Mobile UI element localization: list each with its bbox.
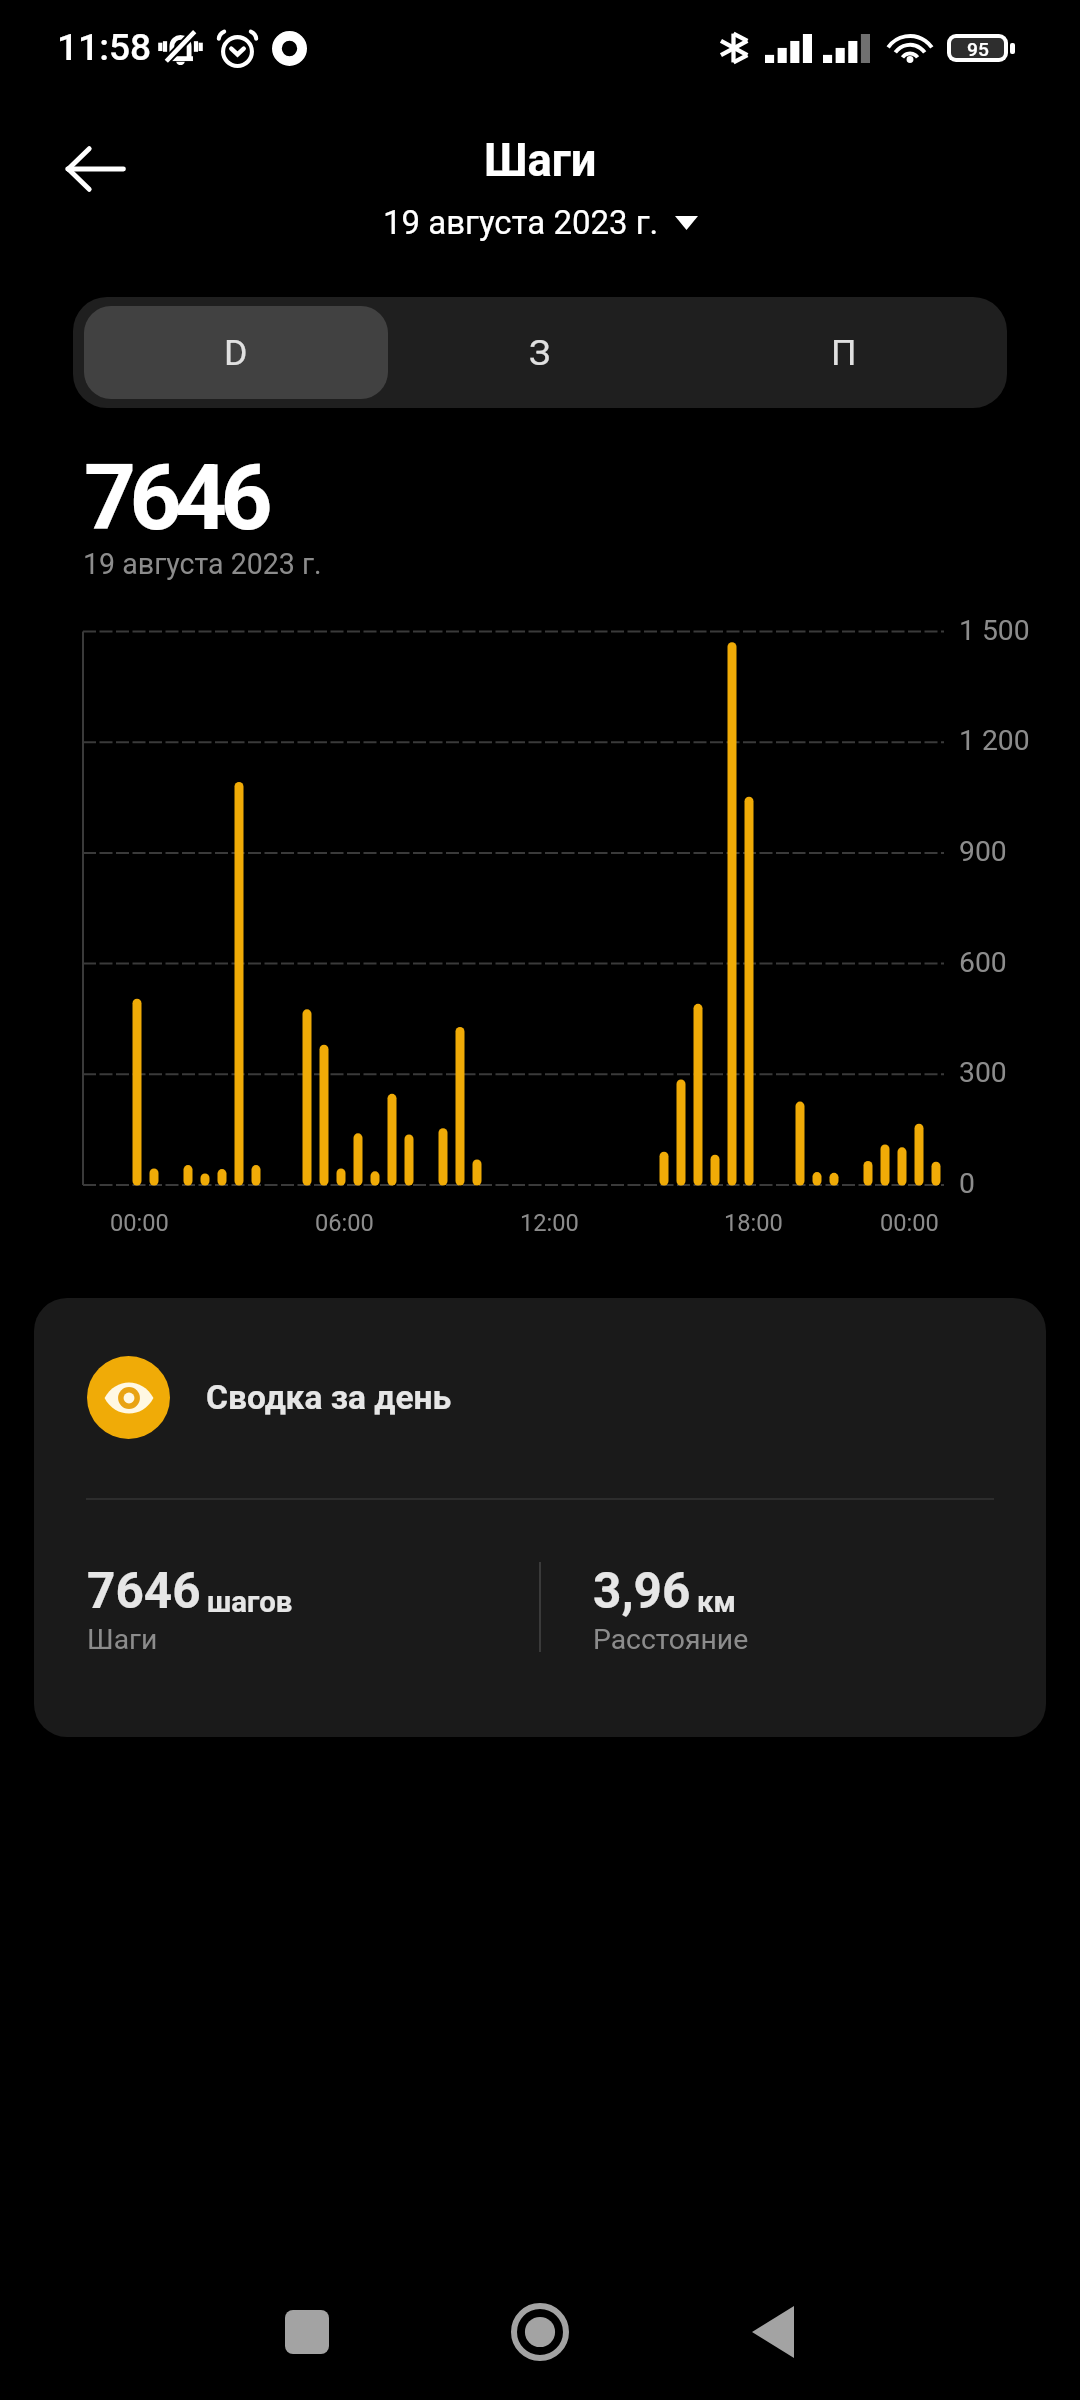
staticText: 7646 xyxy=(87,1562,201,1620)
button[interactable]: Recent apps xyxy=(263,2288,351,2376)
button[interactable]: Home xyxy=(496,2288,584,2376)
staticText: 900 xyxy=(959,835,1007,868)
staticText: 300 xyxy=(959,1056,1007,1089)
staticText: 19 августа 2023 г. xyxy=(383,203,659,242)
button[interactable]: П xyxy=(692,306,996,399)
staticText: км xyxy=(697,1585,736,1619)
staticText: 12:00 xyxy=(520,1209,579,1237)
staticText: 95 xyxy=(967,38,989,58)
staticText: 1 200 xyxy=(959,724,1030,757)
staticText: Сводка за день xyxy=(206,1378,452,1417)
staticText: 19 августа 2023 г. xyxy=(83,547,322,581)
staticText: 00:00 xyxy=(880,1209,939,1237)
staticText: 3,96 xyxy=(593,1562,691,1620)
staticText: З xyxy=(529,332,551,374)
button[interactable]: Сводка за день xyxy=(34,1298,1046,1737)
staticText: П xyxy=(831,332,857,374)
staticText: D xyxy=(224,332,248,374)
button[interactable]: Back xyxy=(51,125,139,213)
button[interactable]: З xyxy=(388,306,692,399)
button[interactable]: Back xyxy=(729,2288,817,2376)
staticText: 18:00 xyxy=(724,1209,783,1237)
staticText: Шаги xyxy=(484,134,597,187)
staticText: 06:00 xyxy=(315,1209,374,1237)
staticText: 7646 xyxy=(84,445,266,551)
staticText: 600 xyxy=(959,946,1007,979)
staticText: шагов xyxy=(207,1585,293,1619)
staticText: 00:00 xyxy=(110,1209,169,1237)
button[interactable]: D xyxy=(84,306,388,399)
staticText: Шаги xyxy=(87,1623,158,1656)
staticText: 11:58 xyxy=(57,26,152,70)
button[interactable]: 19 августа 2023 г. xyxy=(383,203,698,242)
staticText: 0 xyxy=(959,1167,975,1200)
staticText: 1 500 xyxy=(959,614,1030,647)
staticText: Расстояние xyxy=(593,1623,749,1656)
